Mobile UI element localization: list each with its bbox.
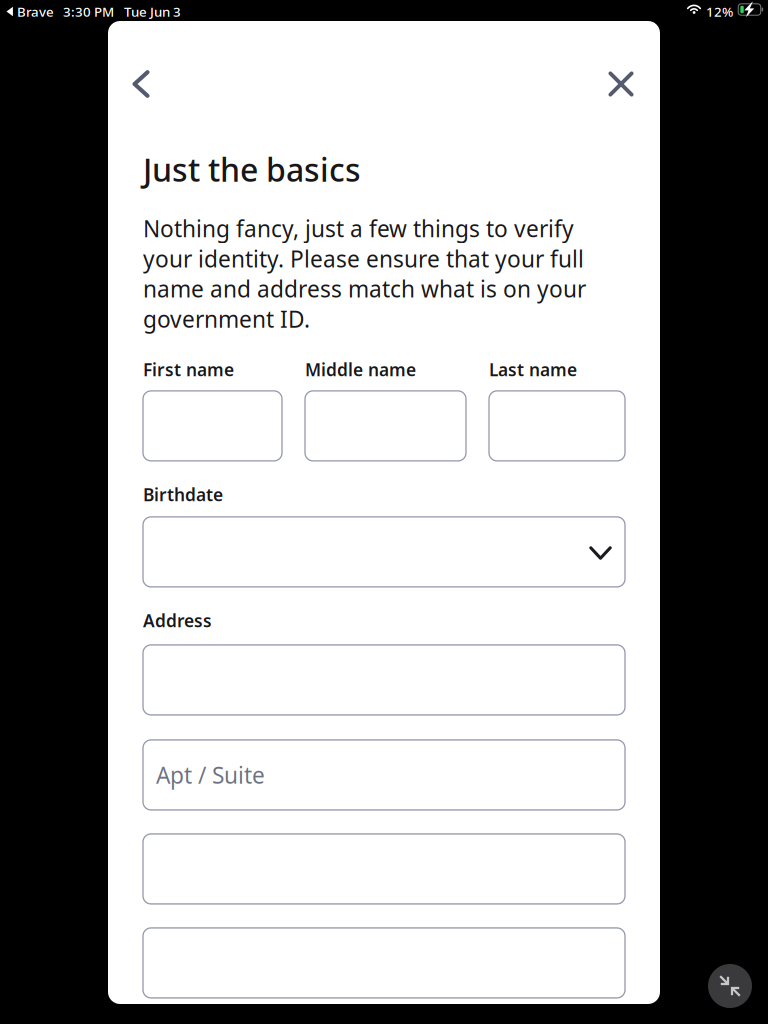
button[interactable]: State: [143, 928, 625, 998]
staticText: 3:30 PM: [63, 3, 114, 20]
button[interactable]: Close: [602, 65, 642, 103]
staticText: Nothing fancy, just a few things to veri…: [143, 213, 586, 334]
staticText: Middle name: [305, 358, 416, 381]
staticText: First name: [143, 358, 234, 381]
staticText: Tue Jun 3: [124, 3, 181, 20]
button[interactable]: Shrink window: [708, 964, 752, 1008]
button[interactable]: Apt or Suite: [143, 740, 625, 810]
staticText: Birthdate: [143, 483, 223, 506]
button[interactable]: Birthdate: [143, 517, 625, 587]
button[interactable]: Last name: [489, 391, 625, 461]
button[interactable]: First name: [143, 391, 282, 461]
staticText: Brave: [17, 3, 54, 20]
staticText: Address: [143, 609, 212, 632]
button[interactable]: Back: [126, 64, 156, 104]
staticText: Just the basics: [143, 148, 361, 190]
button[interactable]: Address line 1: [143, 645, 625, 715]
button[interactable]: City: [143, 834, 625, 904]
staticText: Last name: [489, 358, 577, 381]
staticText: Apt / Suite: [156, 760, 265, 790]
staticText: 12%: [706, 3, 733, 20]
button[interactable]: Middle name: [305, 391, 466, 461]
